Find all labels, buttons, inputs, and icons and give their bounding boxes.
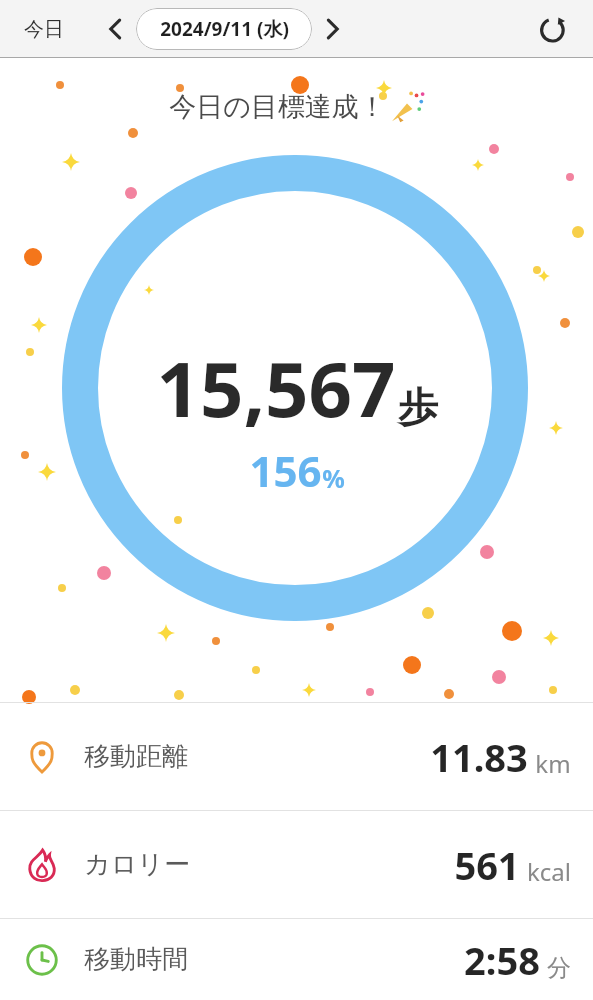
- button[interactable]: Refresh: [531, 7, 575, 51]
- button[interactable]: Active time: [0, 919, 593, 1000]
- staticText: カロリー: [84, 848, 190, 881]
- staticText: 今日: [24, 17, 64, 42]
- staticText: 歩: [398, 382, 438, 432]
- staticText: 移動時間: [84, 943, 188, 976]
- other: Active time: [22, 940, 62, 980]
- other: Distance: [22, 737, 62, 777]
- staticText: kcal: [527, 855, 571, 888]
- button[interactable]: Distance: [0, 703, 593, 810]
- staticText: km: [535, 747, 571, 780]
- button[interactable]: Calories: [0, 811, 593, 918]
- staticText: %: [322, 461, 345, 495]
- staticText: 2:58: [464, 934, 540, 986]
- button[interactable]: Previous day: [96, 9, 136, 49]
- button[interactable]: Next day: [312, 9, 352, 49]
- staticText: 15,567: [156, 336, 396, 440]
- staticText: 2024/9/11 (水): [160, 16, 289, 42]
- staticText: 156: [249, 442, 322, 499]
- button[interactable]: 今日: [18, 11, 70, 48]
- staticText: 分: [547, 953, 571, 983]
- button[interactable]: 2024/9/11 (水): [136, 8, 312, 50]
- staticText: 今日の目標達成！: [169, 90, 386, 124]
- staticText: 移動距離: [84, 740, 188, 773]
- other: Calories: [22, 845, 62, 885]
- staticText: 11.83: [430, 731, 528, 783]
- staticText: 561: [454, 839, 520, 891]
